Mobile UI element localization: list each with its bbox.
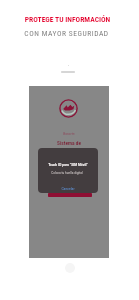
staticText: Coloca tu huella digital <box>38 171 97 175</box>
staticText: Touch ID para “SIM Móvil” <box>38 162 98 166</box>
staticText: Cancelar <box>61 186 75 190</box>
staticText: Sistema de <box>49 140 89 146</box>
staticText: PROTEGE TU INFORMACIÓN <box>0 15 137 24</box>
staticText: Banorte <box>54 132 84 136</box>
button[interactable]: Continuar <box>48 193 92 197</box>
button[interactable]: Cancelar <box>38 182 98 193</box>
button[interactable]: Home <box>65 263 75 273</box>
staticText: CON MAYOR SEGURIDAD <box>0 29 136 38</box>
